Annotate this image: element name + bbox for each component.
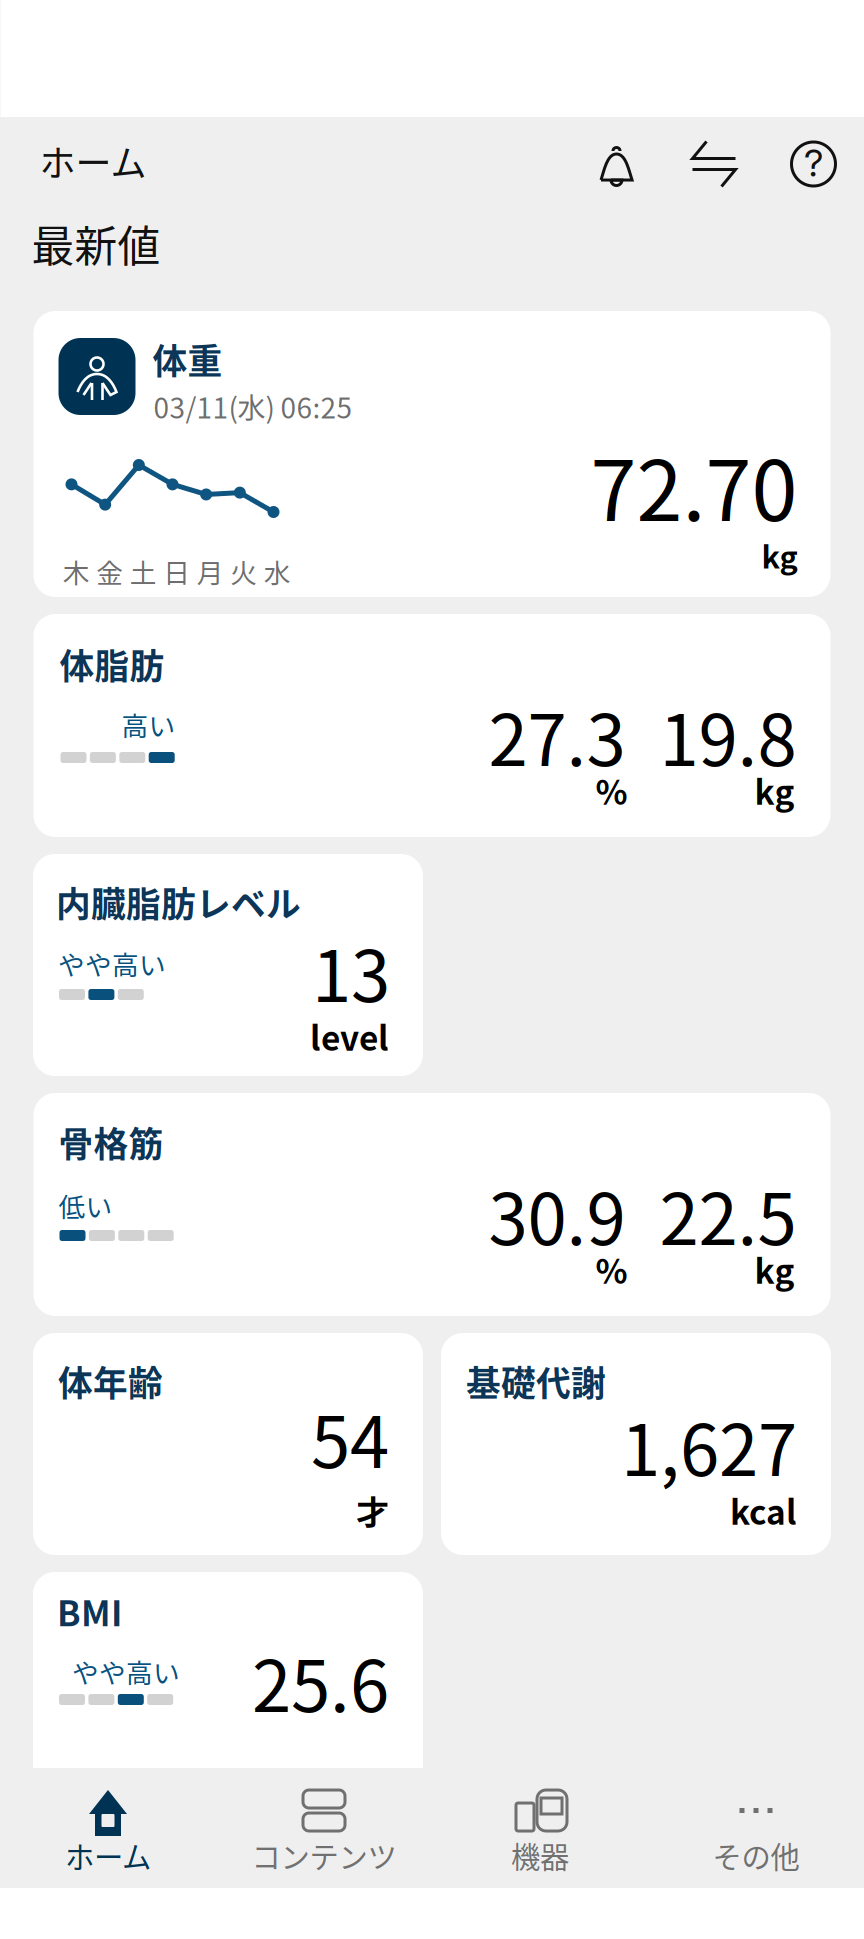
staticText: 日 [163,552,190,591]
staticText: kg [754,766,794,814]
staticText: % [595,1245,627,1293]
button[interactable]: 内臓脂肪レベル [33,854,831,1076]
button[interactable]: Help [790,134,836,180]
staticText: 54 [311,1386,389,1488]
staticText: 25.6 [252,1630,389,1732]
button[interactable]: 体年齢 [33,1333,423,1555]
staticText: 火 [230,552,257,591]
staticText: 高い [121,705,175,744]
button[interactable]: BMI [33,1572,831,1794]
staticText: kcal [730,1486,797,1534]
staticText: % [595,766,627,814]
staticText: その他 [712,1834,799,1876]
staticText: 体脂肪 [59,639,164,689]
staticText: 土 [130,552,157,591]
staticText: 03/11(水) 06:25 [153,386,352,426]
staticText: 骨格筋 [58,1117,163,1167]
staticText: kg [761,533,797,577]
staticText: 基礎代謝 [466,1356,606,1406]
button[interactable]: 体重 [33,311,830,597]
staticText: コンテンツ [251,1834,396,1876]
staticText: 30.9 [488,1163,625,1265]
button[interactable]: 体脂肪 [33,614,830,837]
staticText: 22.5 [659,1163,796,1265]
staticText: 13 [312,920,390,1022]
staticText: 体年齢 [58,1356,163,1406]
staticText: 72.70 [590,425,797,545]
staticText: 機器 [511,1834,569,1876]
staticText: BMI [57,1586,122,1636]
staticText: やや高い [72,1652,180,1691]
button[interactable]: 機器 [432,1768,648,1888]
staticText: 水 [264,552,291,591]
staticText: level [310,1012,389,1060]
staticText: 内臓脂肪レベル [56,877,301,927]
button[interactable]: Sync data [688,132,735,181]
staticText: 月 [197,552,224,591]
staticText: ホーム [65,1834,151,1876]
staticText: ホーム [39,135,146,187]
staticText: 1,627 [621,1394,797,1496]
button[interactable]: ホーム [0,1768,216,1888]
button[interactable]: 骨格筋 [33,1093,830,1316]
staticText: 木 [63,552,90,591]
staticText: 金 [96,552,123,591]
button[interactable]: Notifications [591,135,625,179]
button[interactable]: 基礎代謝 [441,1333,831,1555]
staticText: 低い [58,1186,112,1225]
button[interactable]: コンテンツ [216,1768,432,1888]
button[interactable]: その他 [648,1768,864,1888]
staticText: ? [804,140,823,186]
staticText: 体重 [152,334,222,384]
staticText: 27.3 [488,684,625,786]
staticText: やや高い [58,944,166,983]
staticText: 才 [356,1486,389,1534]
staticText: 19.8 [659,684,796,786]
staticText: kg [754,1245,794,1293]
staticText: 最新値 [31,213,160,274]
